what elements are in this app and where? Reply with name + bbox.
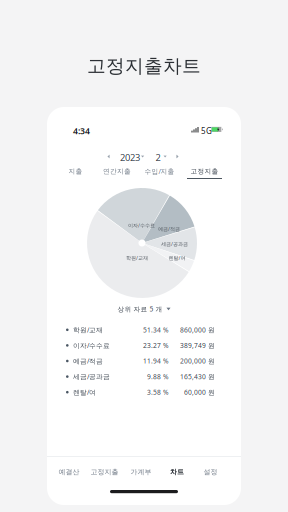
staticText: 렌탈/여 bbox=[73, 388, 96, 397]
staticText: 200,000 원 bbox=[180, 356, 215, 366]
staticText: 2 bbox=[155, 151, 160, 164]
button[interactable]: Previous period bbox=[103, 151, 114, 162]
staticText: 4:34 bbox=[73, 125, 90, 137]
staticText: 60,000 원 bbox=[184, 388, 215, 397]
staticText: 9.88 % bbox=[147, 372, 169, 381]
staticText: 51.34 % bbox=[143, 325, 169, 334]
staticText: 학원/교재 bbox=[73, 325, 103, 334]
staticText: 연간지출 bbox=[103, 167, 131, 175]
staticText: 상위 자료 5 개 bbox=[117, 304, 162, 314]
staticText: 차트 bbox=[170, 468, 184, 476]
staticText: 세금/공과금 bbox=[73, 372, 110, 381]
staticText: 예결산 bbox=[58, 468, 79, 476]
button[interactable]: 예결산 bbox=[52, 465, 86, 479]
staticText: 고정지출차트 bbox=[87, 54, 201, 78]
staticText: 고정지출 bbox=[90, 468, 118, 476]
staticText: 2023 bbox=[120, 151, 140, 164]
staticText: 설정 bbox=[203, 468, 217, 476]
button[interactable]: 연간지출 bbox=[97, 165, 137, 181]
button[interactable]: 상위 자료 5 개 bbox=[47, 303, 241, 315]
staticText: 389,749 원 bbox=[180, 341, 215, 350]
staticText: 11.94 % bbox=[143, 356, 169, 366]
staticText: 렌탈/여 bbox=[168, 254, 185, 261]
staticText: 세금/공과금 bbox=[161, 240, 188, 247]
staticText: 수입/지출 bbox=[144, 167, 174, 176]
button[interactable]: 설정 bbox=[193, 465, 227, 479]
button[interactable]: Next period bbox=[172, 151, 183, 162]
staticText: 예금/적금 bbox=[158, 225, 180, 232]
staticText: 고정지출 bbox=[190, 167, 218, 175]
staticText: 5G bbox=[201, 125, 212, 136]
staticText: 예금/적금 bbox=[73, 356, 103, 366]
staticText: 가계부 bbox=[130, 468, 151, 476]
staticText: 학원/교재 bbox=[126, 254, 148, 261]
button[interactable]: 고정지출 bbox=[184, 165, 224, 181]
staticText: 지출 bbox=[68, 167, 82, 175]
button[interactable]: 고정지출 bbox=[87, 465, 121, 479]
staticText: 3.58 % bbox=[147, 388, 169, 397]
button[interactable]: 차트 bbox=[160, 465, 194, 479]
staticText: 이자/수수료 bbox=[128, 222, 155, 229]
staticText: 23.27 % bbox=[143, 341, 169, 350]
button[interactable]: 수입/지출 bbox=[139, 165, 179, 181]
button[interactable]: 지출 bbox=[55, 165, 95, 181]
button[interactable]: 가계부 bbox=[124, 465, 158, 479]
staticText: 165,430 원 bbox=[180, 372, 215, 381]
staticText: 이자/수수료 bbox=[73, 341, 110, 350]
staticText: 860,000 원 bbox=[180, 325, 215, 334]
